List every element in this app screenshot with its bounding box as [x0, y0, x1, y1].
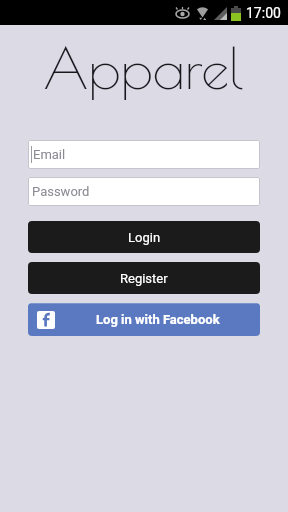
button[interactable]: Register: [28, 262, 260, 294]
staticText: Register: [120, 271, 168, 286]
staticText: Apparel: [43, 35, 245, 101]
staticText: Log in with Facebook: [96, 312, 220, 327]
staticText: 17:00: [246, 5, 281, 21]
button[interactable]: Login: [28, 221, 260, 253]
button[interactable]: Password: [28, 177, 260, 206]
staticText: Email: [33, 147, 66, 162]
staticText: Password: [32, 184, 90, 199]
button[interactable]: Log in with Facebook: [28, 303, 260, 336]
staticText: Login: [128, 230, 161, 245]
button[interactable]: Email: [28, 140, 260, 169]
